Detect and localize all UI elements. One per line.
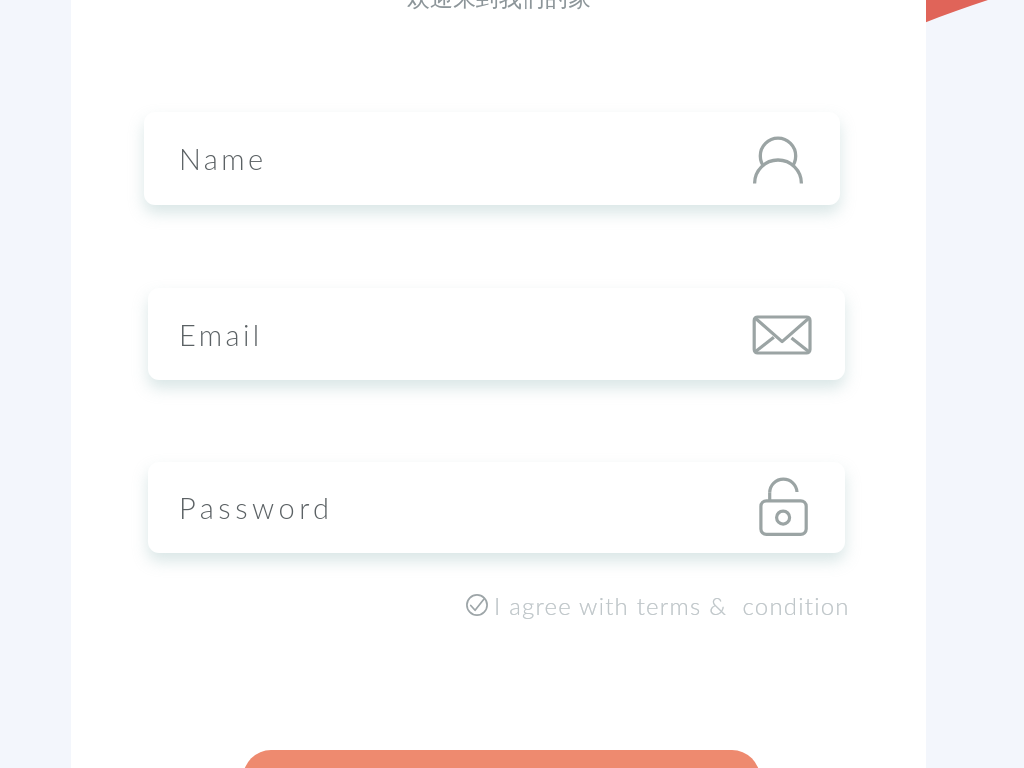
- other: Name field: [748, 133, 808, 193]
- staticText: I agree with terms & condition: [494, 591, 850, 620]
- button[interactable]: Agree to terms: [463, 590, 843, 620]
- button[interactable]: [148, 462, 845, 553]
- staticText: Email: [179, 317, 263, 352]
- staticText: Name: [179, 141, 267, 176]
- button[interactable]: [144, 112, 840, 205]
- other: Email field: [752, 305, 812, 365]
- button[interactable]: [243, 750, 760, 768]
- other: Password field: [754, 479, 814, 539]
- other: Agree to terms: [465, 593, 489, 617]
- staticText: 欢迎来到我们的家: [407, 0, 591, 13]
- button[interactable]: [148, 288, 845, 380]
- staticText: Password: [179, 490, 334, 525]
